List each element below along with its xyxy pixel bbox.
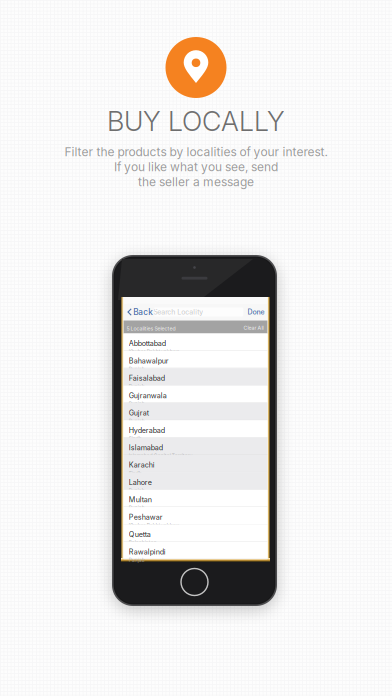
staticText: Punjab	[129, 505, 145, 511]
staticText: Abbottabad	[129, 339, 166, 348]
button[interactable]: Quetta	[124, 524, 267, 542]
button[interactable]: Hyderabad	[124, 420, 267, 438]
staticText: Khyber Pakhtunkhwa	[129, 522, 180, 528]
staticText: Karachi	[129, 461, 155, 469]
button[interactable]: Multan	[124, 490, 267, 507]
staticText: 5 Localities Selected	[126, 325, 175, 332]
staticText: Sindh	[129, 470, 142, 476]
staticText: Khyber Pakhtunkhwa	[129, 349, 180, 354]
staticText: Islamabad	[129, 443, 163, 452]
staticText: Peshawar	[129, 513, 163, 521]
staticText: BUY LOCALLY	[107, 105, 285, 138]
button[interactable]: Gujrat	[124, 403, 267, 420]
staticText: Punjab	[129, 557, 145, 563]
staticText: If you like what you see, send	[114, 160, 278, 174]
button[interactable]: Back	[126, 303, 154, 320]
staticText: Faisalabad	[129, 374, 165, 382]
staticText: Islamabad Capital Territory	[129, 453, 193, 459]
staticText: Quetta	[129, 530, 151, 539]
button[interactable]: Abbottabad	[124, 333, 267, 351]
staticText: Gujranwala	[129, 391, 167, 400]
staticText: Rawalpindi	[129, 547, 166, 556]
button[interactable]: Peshawar	[124, 507, 267, 524]
button[interactable]: Karachi	[124, 455, 267, 472]
staticText: Search Locality	[153, 308, 203, 316]
staticText: Back	[133, 307, 153, 317]
button[interactable]: Done	[246, 303, 265, 320]
staticText: the seller a message	[138, 175, 254, 189]
staticText: Punjab	[129, 366, 145, 372]
staticText: Lahore	[129, 478, 152, 487]
staticText: Balochistan	[129, 540, 157, 545]
staticText: Hyderabad	[129, 426, 165, 435]
staticText: Punjab	[129, 488, 145, 493]
staticText: Bahawalpur	[129, 356, 169, 365]
staticText: Punjab	[129, 401, 145, 407]
staticText: Done	[247, 308, 264, 316]
button[interactable]: Islamabad	[124, 438, 267, 455]
staticText: Clear All	[244, 325, 264, 331]
button[interactable]: Clear All	[243, 321, 265, 334]
button[interactable]: Faisalabad	[124, 368, 267, 386]
button[interactable]: Search Locality	[149, 307, 243, 316]
staticText: Sindh	[129, 435, 142, 441]
staticText: Filter the products by localities of you…	[64, 145, 327, 159]
staticText: Punjab	[129, 383, 145, 389]
button[interactable]: Lahore	[124, 472, 267, 490]
button[interactable]: Bahawalpur	[124, 351, 267, 368]
staticText: Punjab	[129, 418, 145, 424]
button[interactable]: Rawalpindi	[124, 542, 267, 559]
staticText: Multan	[129, 495, 152, 504]
button[interactable]: Gujranwala	[124, 386, 267, 403]
staticText: Gujrat	[129, 408, 149, 417]
